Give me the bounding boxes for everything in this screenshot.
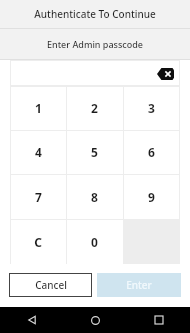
staticText: 7	[35, 189, 42, 205]
staticText: 0	[91, 234, 98, 250]
staticText: 2	[91, 100, 98, 116]
button[interactable]: 2	[66, 86, 123, 130]
button[interactable]: Back	[0, 307, 64, 333]
button[interactable]: Recents	[127, 307, 190, 333]
button[interactable]: 4	[10, 130, 66, 174]
staticText: 9	[148, 189, 155, 205]
staticText: 5	[91, 144, 98, 160]
button[interactable]: 5	[66, 130, 123, 174]
button[interactable]: 8	[66, 174, 123, 219]
staticText: C	[34, 234, 42, 250]
staticText: Cancel	[35, 278, 67, 292]
staticText: Authenticate To Continue	[34, 7, 156, 21]
button[interactable]: 1	[10, 86, 66, 130]
staticText: 8	[91, 189, 98, 205]
button[interactable]: C	[10, 219, 66, 264]
staticText: Enter	[126, 278, 152, 292]
button[interactable]: Cancel	[9, 273, 92, 297]
staticText: 4	[35, 144, 42, 160]
staticText: 6	[148, 144, 155, 160]
button[interactable]: 0	[66, 219, 123, 264]
staticText: Enter Admin passcode	[47, 38, 143, 50]
button[interactable]: 6	[123, 130, 180, 174]
button[interactable]: Home	[64, 307, 127, 333]
button[interactable]: 9	[123, 174, 180, 219]
staticText: 1	[35, 100, 42, 116]
button[interactable]: 7	[10, 174, 66, 219]
staticText: 3	[148, 100, 155, 116]
button[interactable]: 3	[123, 86, 180, 130]
button[interactable]: Enter	[97, 273, 181, 297]
button[interactable]: Backspace	[156, 67, 174, 80]
